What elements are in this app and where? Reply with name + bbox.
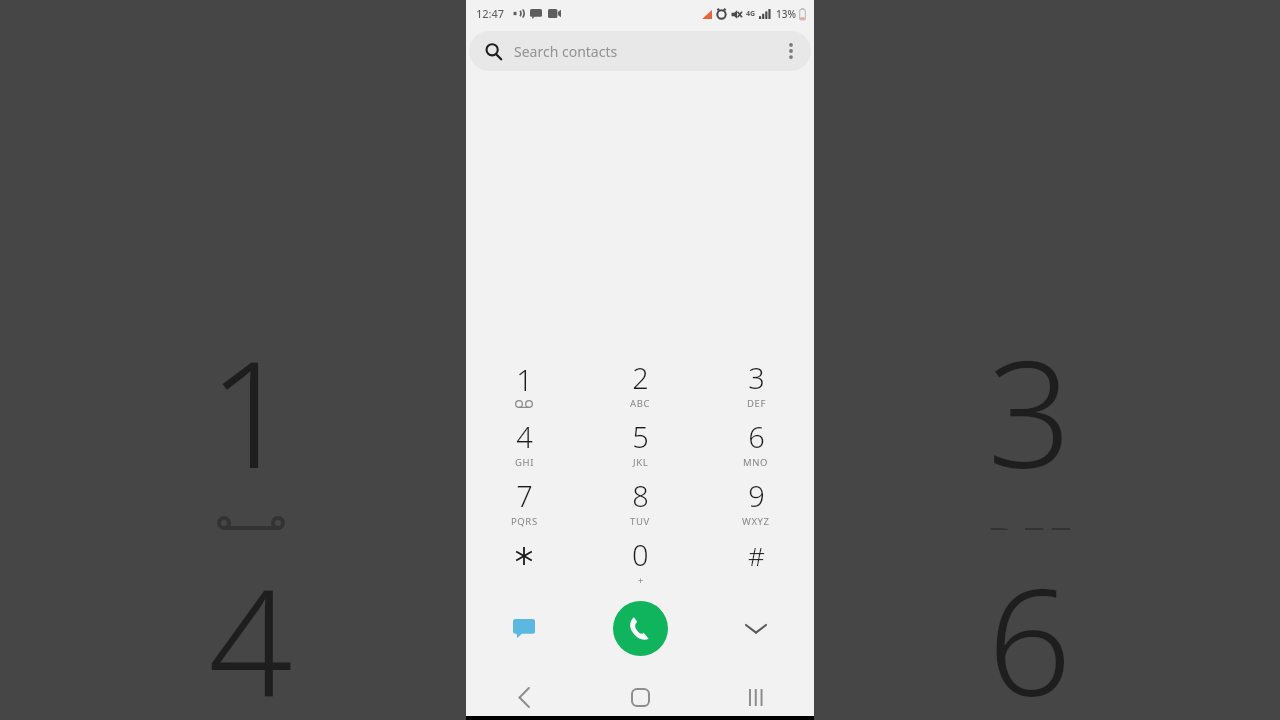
button[interactable]: Search contacts <box>469 31 811 71</box>
staticText: # <box>748 538 765 573</box>
staticText: 3 <box>748 358 765 397</box>
button[interactable]: Home <box>582 678 698 716</box>
button[interactable]: Call <box>613 601 668 656</box>
staticText: JKL <box>633 456 649 469</box>
staticText: WXYZ <box>742 515 770 528</box>
staticText: 4G <box>746 9 756 19</box>
staticText: 2 <box>632 358 649 397</box>
staticText: 5 <box>632 417 649 456</box>
button[interactable]: 9 <box>698 472 814 531</box>
staticText: Search contacts <box>514 42 618 61</box>
button[interactable]: Recents <box>698 678 814 716</box>
button[interactable]: 3 <box>698 354 814 413</box>
staticText: MNO <box>743 456 769 469</box>
button[interactable]: 1 <box>466 354 582 413</box>
button[interactable]: 5 <box>582 413 698 472</box>
button[interactable]: 8 <box>582 472 698 531</box>
staticText: 6 <box>748 417 765 456</box>
button[interactable]: Back <box>466 678 582 716</box>
staticText: 12:47 <box>476 6 505 21</box>
staticText: 1 <box>208 310 293 512</box>
button[interactable]: 6 <box>698 413 814 472</box>
button[interactable] <box>466 531 582 590</box>
button[interactable]: Hide keypad <box>698 590 814 666</box>
button[interactable]: Send message <box>466 590 582 666</box>
staticText: 1 <box>516 360 533 399</box>
button[interactable]: 7 <box>466 472 582 531</box>
staticText: 7 <box>516 476 533 515</box>
staticText: DEF <box>986 512 1073 530</box>
staticText: ABC <box>630 397 651 410</box>
button[interactable]: 4 <box>466 413 582 472</box>
button[interactable]: # <box>698 531 814 590</box>
staticText: TUV <box>630 515 650 528</box>
staticText: 3 <box>987 310 1072 512</box>
button[interactable]: 2 <box>582 354 698 413</box>
button[interactable]: More options <box>771 31 811 71</box>
staticText: GHI <box>515 456 534 469</box>
staticText: 13% <box>776 7 796 21</box>
button[interactable]: 0 <box>582 531 698 590</box>
staticText: 4 <box>208 538 293 720</box>
staticText: 4 <box>516 417 533 456</box>
staticText: + <box>638 574 644 586</box>
staticText: 9 <box>748 476 765 515</box>
staticText: DEF <box>747 397 766 410</box>
staticText: 8 <box>632 476 649 515</box>
staticText: 6 <box>987 538 1072 720</box>
staticText: 0 <box>632 535 649 574</box>
staticText: PQRS <box>511 515 538 528</box>
